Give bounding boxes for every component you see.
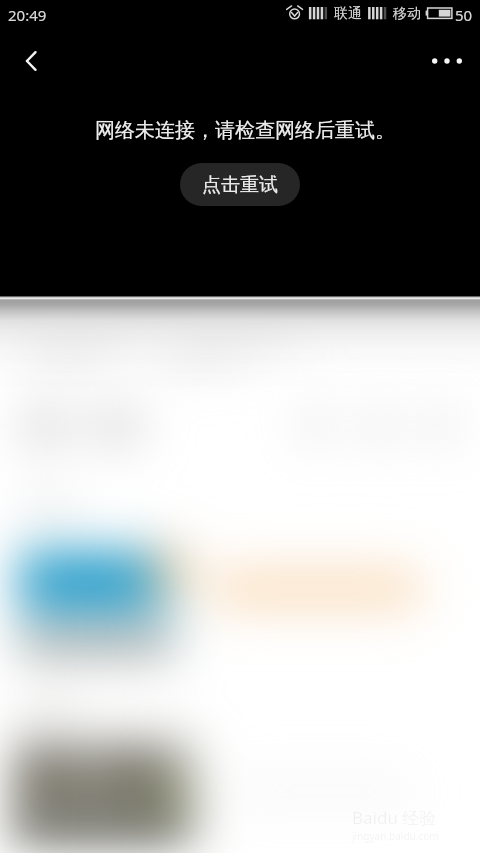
staticText: 联通: [334, 5, 362, 23]
staticText: 点击重试: [202, 173, 278, 197]
staticText: 移动: [393, 5, 421, 23]
button[interactable]: Back: [10, 39, 54, 83]
staticText: 20:49: [8, 5, 47, 25]
staticText: 50: [455, 5, 473, 25]
staticText: 网络未连接，请检查网络后重试。: [95, 118, 395, 143]
staticText: Baidu 经验: [352, 806, 437, 829]
button[interactable]: 点击重试: [180, 163, 300, 206]
button[interactable]: More options: [425, 39, 469, 83]
staticText: jingyan.baidu.com: [352, 829, 439, 843]
